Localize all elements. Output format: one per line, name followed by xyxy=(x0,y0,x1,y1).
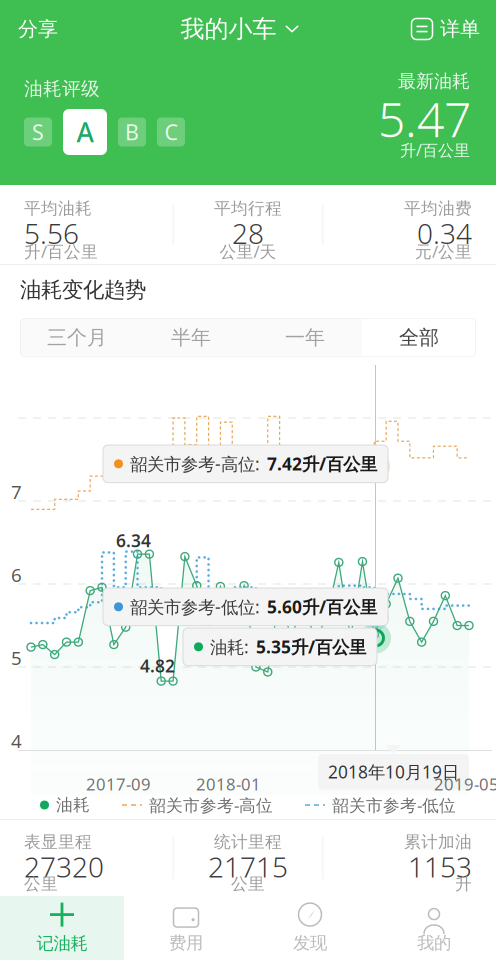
staticText: 5.47 xyxy=(378,86,471,151)
staticText: 升/百公里 xyxy=(24,240,98,263)
staticText: 韶关市参考-低位 xyxy=(332,794,456,816)
staticText: 公里/天 xyxy=(219,240,276,263)
staticText: 元/公里 xyxy=(415,240,472,263)
staticText: 韶关市参考-高位 xyxy=(149,794,273,816)
staticText: 韶关市参考-高位: xyxy=(130,452,260,476)
button[interactable]: B xyxy=(118,117,146,146)
staticText: 2019-05 xyxy=(434,773,496,795)
staticText: 发现 xyxy=(293,932,327,954)
staticText: 平均油耗 xyxy=(24,198,92,219)
staticText: 累计加油 xyxy=(404,831,472,852)
button[interactable]: S xyxy=(24,117,52,146)
staticText: 7 xyxy=(11,479,22,504)
staticText: 公里 xyxy=(231,873,265,894)
staticText: 6.34 xyxy=(116,529,151,552)
staticText: 平均行程 xyxy=(214,198,282,219)
staticText: 2018年10月19日 xyxy=(328,760,459,784)
staticText: 0.34 xyxy=(417,214,472,252)
staticText: 平均油费 xyxy=(404,198,472,219)
staticText: 公里 xyxy=(24,873,58,894)
staticText: 5.56 xyxy=(24,214,79,252)
staticText: 2017-09 xyxy=(86,773,151,795)
staticText: 油耗评级 xyxy=(24,77,100,100)
staticText: 油耗变化趋势 xyxy=(20,277,146,303)
staticText: 油耗 xyxy=(56,794,90,815)
staticText: 4.82 xyxy=(140,654,175,677)
button[interactable]: 发现 xyxy=(248,896,372,960)
staticText: 费用 xyxy=(169,932,203,954)
staticText: 我的 xyxy=(417,932,451,954)
staticText: 全部 xyxy=(399,325,439,350)
button[interactable]: 半年 xyxy=(134,318,248,356)
staticText: 5.60升/百公里 xyxy=(267,595,377,619)
staticText: 7.42升/百公里 xyxy=(267,452,377,476)
staticText: 统计里程 xyxy=(214,831,282,852)
staticText: 我的小车 xyxy=(180,14,276,44)
button[interactable]: 我的 xyxy=(372,896,496,960)
button[interactable]: A xyxy=(63,109,107,155)
staticText: 1153 xyxy=(408,847,472,886)
staticText: 27320 xyxy=(24,847,104,886)
staticText: A xyxy=(76,114,93,150)
staticText: 表显里程 xyxy=(24,831,92,852)
button[interactable]: 三个月 xyxy=(20,318,134,356)
staticText: 6 xyxy=(11,562,22,587)
staticText: S xyxy=(32,117,44,147)
staticText: 记油耗 xyxy=(36,933,87,954)
button[interactable]: C xyxy=(157,117,185,146)
staticText: 油耗: xyxy=(210,635,249,659)
staticText: 5.35升/百公里 xyxy=(256,635,366,659)
staticText: C xyxy=(164,117,177,147)
staticText: 升/百公里 xyxy=(400,139,470,161)
staticText: 最新油耗 xyxy=(398,70,470,93)
staticText: 4 xyxy=(11,728,22,753)
staticText: 详单 xyxy=(440,16,480,42)
staticText: 21715 xyxy=(208,847,288,886)
button[interactable]: 分享 xyxy=(0,0,68,58)
button[interactable]: 全部 xyxy=(362,318,476,356)
staticText: 三个月 xyxy=(47,325,107,350)
staticText: 一年 xyxy=(285,325,325,350)
staticText: 韶关市参考-低位: xyxy=(130,595,260,619)
staticText: 半年 xyxy=(171,325,211,350)
staticText: 2018-01 xyxy=(196,773,261,795)
staticText: 28 xyxy=(232,214,264,252)
staticText: B xyxy=(125,117,139,147)
button[interactable]: 我的小车 xyxy=(180,0,298,58)
button[interactable]: 详单 xyxy=(411,0,496,58)
staticText: 升 xyxy=(455,873,472,894)
staticText: 分享 xyxy=(18,16,58,42)
staticText: 5 xyxy=(11,645,22,670)
button[interactable]: 记油耗 xyxy=(0,896,124,960)
button[interactable]: 费用 xyxy=(124,896,248,960)
button[interactable]: 一年 xyxy=(248,318,362,356)
